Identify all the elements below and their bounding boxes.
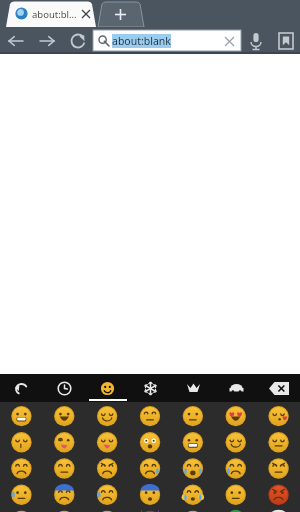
button[interactable]: Bookmarks [271,27,300,54]
button[interactable]: Emoji [85,428,128,454]
button[interactable]: Emoji [128,402,171,428]
button[interactable]: New tab [110,4,130,24]
button[interactable]: Recent [43,374,86,402]
button[interactable]: Emoji [85,454,128,480]
button[interactable]: Objects [172,374,215,402]
button[interactable]: Emoji [214,454,257,480]
button[interactable]: Emoji [257,428,300,454]
button[interactable]: Emoji [128,454,171,480]
button[interactable]: Emoji [171,402,214,428]
button[interactable]: Emoji [0,480,42,506]
staticText: about:bl… [32,8,77,21]
button[interactable]: Forward [31,27,62,54]
button[interactable]: Emoji [171,506,214,512]
button[interactable]: Emoji [0,506,42,512]
button[interactable]: Close tab [78,6,94,22]
button[interactable]: Emoji [214,506,257,512]
button[interactable]: about:bl… [32,3,78,25]
button[interactable]: Emoji [257,480,300,506]
button[interactable]: Emoji [128,506,171,512]
button[interactable]: Reload [62,27,93,54]
button[interactable]: Emoji [85,402,128,428]
button[interactable]: Back [0,27,31,54]
button[interactable]: Emoji [257,402,300,428]
button[interactable]: Voice search [241,27,271,54]
button[interactable]: Undo [0,374,43,402]
button[interactable]: Clear [221,33,237,49]
button[interactable]: Emoji [85,506,128,512]
button[interactable]: Emoji [0,402,42,428]
button[interactable]: Emoji [128,428,171,454]
button[interactable]: Emoji [257,454,300,480]
button[interactable]: Emoji [257,506,300,512]
button[interactable]: Emoji [128,480,171,506]
button[interactable]: Emoji [42,428,85,454]
button[interactable]: Emoji [42,454,85,480]
button[interactable]: Emoji [214,428,257,454]
button[interactable]: Smileys [86,374,129,402]
button[interactable]: about:blank [93,30,241,51]
button[interactable]: Emoji [214,480,257,506]
button[interactable]: Emoji [42,402,85,428]
button[interactable]: Emoji [42,506,85,512]
button[interactable]: Emoji [171,480,214,506]
button[interactable]: Emoji [0,428,42,454]
button[interactable]: Travel [215,374,258,402]
button[interactable]: Backspace [258,374,300,402]
button[interactable]: Emoji [42,480,85,506]
button[interactable]: Emoji [0,454,42,480]
button[interactable]: Emoji [171,428,214,454]
button[interactable]: Emoji [171,454,214,480]
button[interactable]: Nature [129,374,172,402]
staticText: about:blank [112,34,171,48]
button[interactable]: Emoji [85,480,128,506]
button[interactable]: Emoji [214,402,257,428]
